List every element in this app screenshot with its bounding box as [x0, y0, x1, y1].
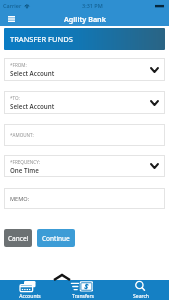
button[interactable]: *FROM: [4, 58, 165, 81]
staticText: *TO: [10, 95, 20, 101]
button[interactable]: Menu [4, 12, 18, 26]
staticText: Continue [42, 234, 70, 243]
button[interactable]: Continue [37, 229, 75, 247]
button[interactable]: *FREQUENCY: [4, 155, 165, 177]
button[interactable]: Transfers [54, 280, 109, 300]
button[interactable]: Accounts [2, 280, 57, 300]
button[interactable]: MEMO: [4, 188, 165, 209]
button[interactable]: TRANSFER FUNDS [4, 28, 165, 50]
staticText: Carrier [3, 2, 22, 9]
button[interactable]: *AMOUNT: [4, 124, 165, 146]
staticText: Agility Bank [64, 14, 106, 24]
staticText: Select Account [10, 69, 55, 77]
staticText: Transfers [72, 293, 94, 300]
staticText: *AMOUNT: [10, 132, 34, 138]
button[interactable]: *TO: [4, 91, 165, 114]
staticText: Cancel [8, 234, 29, 243]
staticText: 3:31 PM [82, 2, 103, 9]
staticText: Search [133, 293, 149, 300]
staticText: MEMO: [10, 195, 30, 203]
staticText: TRANSFER FUNDS [10, 34, 73, 44]
button[interactable]: Search [113, 280, 168, 300]
staticText: Select Account [10, 102, 55, 110]
button[interactable]: Cancel [4, 229, 32, 247]
staticText: One Time [10, 166, 39, 174]
staticText: *FREQUENCY: [10, 159, 41, 165]
staticText: *FROM: [10, 62, 27, 68]
staticText: Accounts [19, 293, 41, 300]
